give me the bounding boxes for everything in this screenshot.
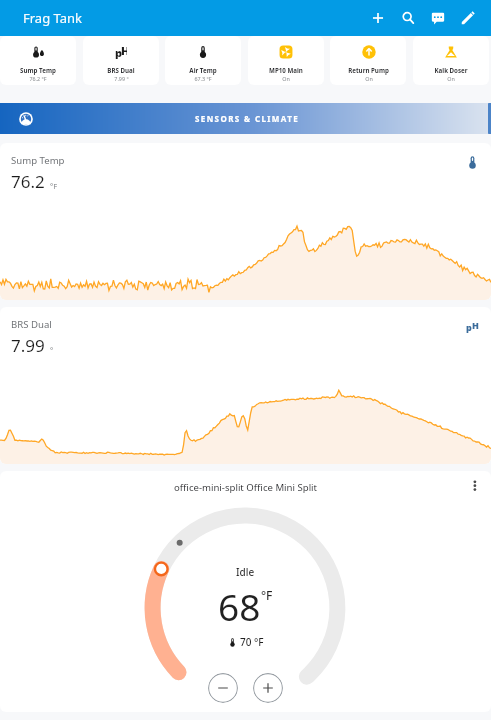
- staticText: 67.3 °F: [194, 75, 212, 82]
- button[interactable]: Sump Temp: [0, 36, 76, 85]
- staticText: BRS Dual: [11, 318, 52, 331]
- staticText: Idle: [236, 565, 255, 579]
- staticText: Return Pump: [348, 66, 389, 74]
- staticText: p: [466, 321, 472, 333]
- button[interactable]: Return Pump: [330, 36, 406, 85]
- button[interactable]: Assist: [423, 3, 453, 33]
- staticText: BRS Dual: [107, 66, 135, 74]
- button[interactable]: MP10 Main: [248, 36, 324, 85]
- button[interactable]: More options: [465, 474, 485, 494]
- staticText: office-mini-split Office Mini Split: [174, 481, 318, 494]
- button[interactable]: p: [83, 36, 159, 85]
- button[interactable]: SENSORS & CLIMATE: [0, 103, 488, 134]
- button[interactable]: Decrease temperature: [208, 673, 238, 703]
- staticText: H: [121, 43, 127, 57]
- staticText: 7.99 °: [114, 75, 129, 82]
- staticText: Kalk Doser: [434, 66, 468, 74]
- staticText: H: [472, 319, 479, 331]
- staticText: 68: [218, 581, 261, 631]
- button[interactable]: Increase temperature: [253, 673, 283, 703]
- staticText: °F: [50, 181, 58, 191]
- staticText: 76.2 °F: [29, 75, 47, 82]
- staticText: Sump Temp: [11, 154, 65, 167]
- staticText: Frag Tank: [23, 9, 82, 27]
- staticText: 76.2: [11, 170, 45, 193]
- button[interactable]: Kalk Doser: [413, 36, 489, 85]
- staticText: On: [282, 75, 290, 82]
- staticText: Sump Temp: [20, 66, 56, 74]
- staticText: Air Temp: [189, 66, 217, 74]
- staticText: p: [115, 45, 123, 59]
- staticText: °: [50, 345, 54, 355]
- staticText: On: [447, 75, 455, 82]
- button[interactable]: Add: [363, 3, 393, 33]
- button[interactable]: Sump Temp: [0, 143, 491, 300]
- staticText: 70 °F: [240, 635, 264, 649]
- staticText: On: [365, 75, 373, 82]
- button[interactable]: Search: [393, 3, 423, 33]
- button[interactable]: Air Temp: [165, 36, 241, 85]
- staticText: °F: [261, 587, 273, 603]
- button[interactable]: BRS Dual: [0, 307, 491, 464]
- staticText: SENSORS & CLIMATE: [195, 113, 300, 124]
- button[interactable]: Edit dashboard: [453, 3, 483, 33]
- staticText: 7.99: [11, 334, 45, 357]
- staticText: MP10 Main: [269, 66, 303, 74]
